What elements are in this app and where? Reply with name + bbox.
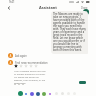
button[interactable]: App 9 (73, 92, 76, 95)
button[interactable]: App 3 (36, 92, 40, 96)
button[interactable]: The Masons are ready to take on new proj… (51, 11, 88, 54)
button[interactable]: Back (6, 5, 12, 11)
staticText: Ask again (15, 54, 27, 58)
staticText: Find new recommendation (15, 61, 48, 65)
button[interactable]: Done (81, 6, 88, 10)
button[interactable]: App 7 (61, 92, 64, 95)
button[interactable]: App 8 (67, 92, 70, 95)
button[interactable]: Ask again (8, 53, 48, 58)
button[interactable] (14, 64, 39, 68)
button[interactable]: Assistant avatar (83, 9, 89, 15)
button[interactable]: App 6 (55, 92, 58, 95)
staticText: The Masons are ready to take on new proj… (53, 12, 86, 51)
button[interactable]: Find new recommendation (8, 60, 48, 65)
button[interactable]: Status (79, 81, 86, 84)
button[interactable]: App 0 (18, 91, 23, 96)
button[interactable]: App 2 (30, 92, 34, 96)
staticText: Assistant (39, 5, 57, 10)
staticText: 9:41 (9, 0, 15, 4)
staticText: active now (43, 11, 54, 12)
button[interactable]: App 4 (42, 92, 46, 96)
staticText: I can complete almost any task or answer… (14, 70, 47, 85)
